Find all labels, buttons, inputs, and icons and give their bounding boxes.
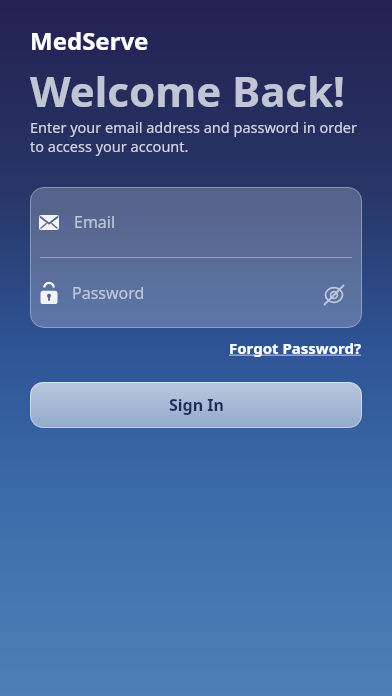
staticText: Email [74, 211, 116, 233]
staticText: MedServe [30, 24, 149, 57]
button[interactable] [323, 284, 345, 306]
button[interactable]: Password [30, 258, 362, 328]
button[interactable]: Forgot Password? [229, 338, 362, 358]
staticText: Enter your email address and password in… [30, 117, 358, 156]
staticText: Welcome Back! [30, 62, 345, 119]
button[interactable]: Sign In [30, 382, 362, 428]
staticText: Sign In [169, 394, 224, 416]
button[interactable]: Email [30, 187, 362, 257]
staticText: Password [72, 282, 145, 304]
